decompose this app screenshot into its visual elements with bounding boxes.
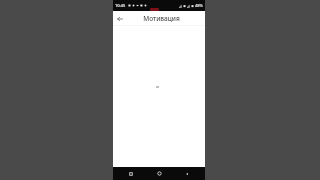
button[interactable]: Recent apps xyxy=(121,167,141,180)
staticText: 10:45 xyxy=(115,3,126,8)
staticText: Мотивация xyxy=(143,14,180,23)
staticText: 48% xyxy=(195,3,203,8)
button[interactable]: Back xyxy=(177,167,197,180)
button[interactable]: Back xyxy=(113,11,127,26)
button[interactable]: Home xyxy=(149,167,169,180)
